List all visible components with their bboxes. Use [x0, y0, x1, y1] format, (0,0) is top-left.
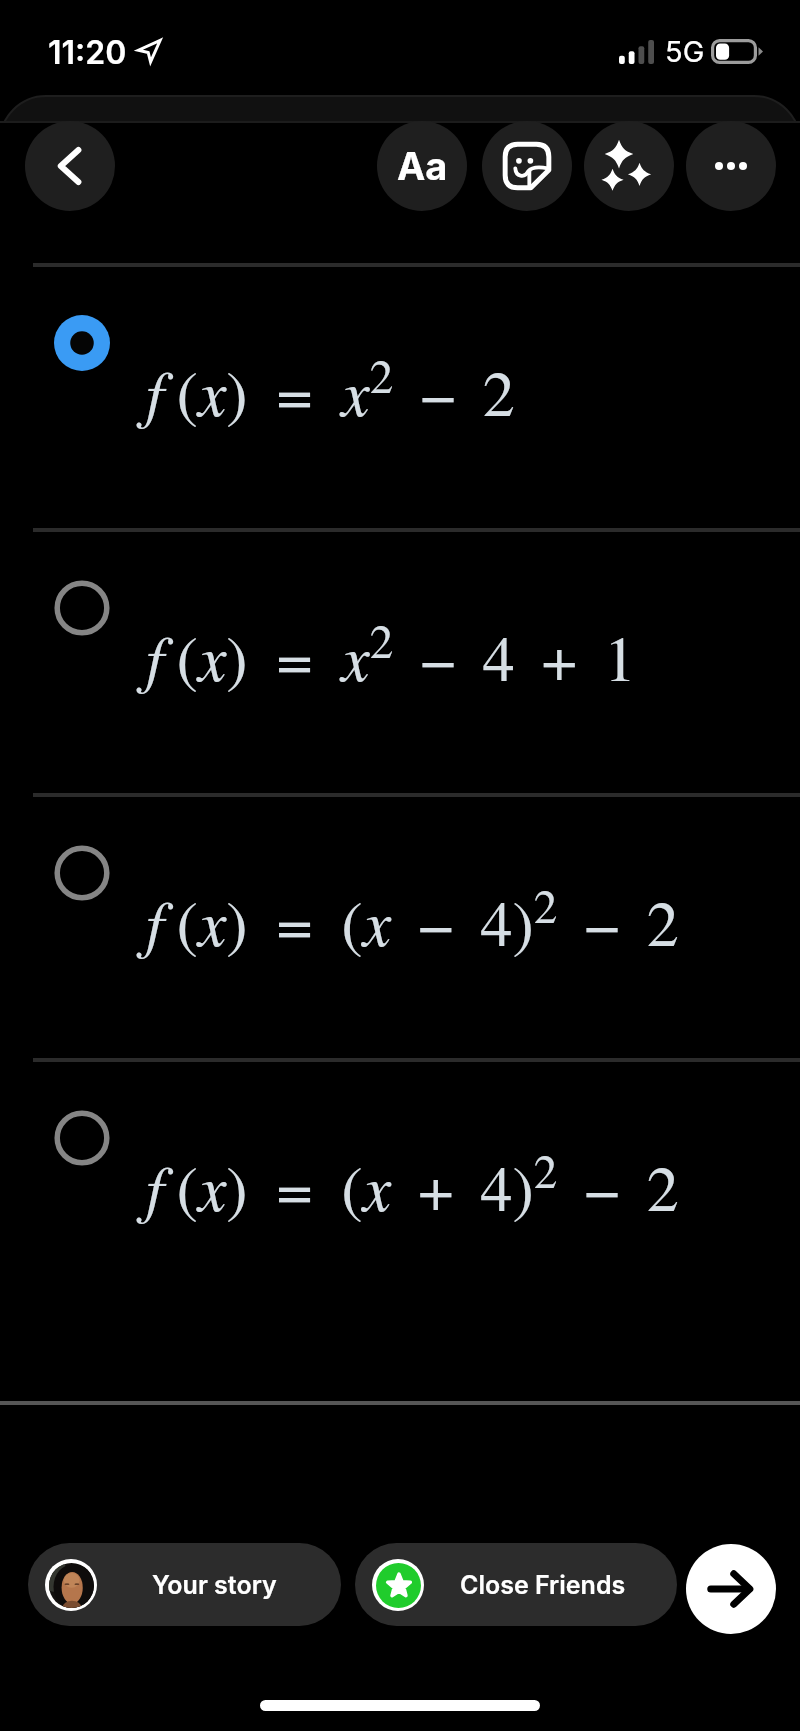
staticText: Your story — [152, 1570, 277, 1600]
staticText: f (x) = x2 − 4 + 1 — [146, 608, 637, 699]
staticText: f (x) = x2 − 2 — [146, 343, 515, 434]
button[interactable]: Effects — [584, 121, 674, 211]
staticText: f (x) = (x − 4)2 − 2 — [146, 873, 679, 964]
button[interactable]: Close Friends — [355, 1543, 677, 1626]
staticText: 11:20 — [48, 33, 127, 72]
button[interactable] — [0, 1060, 800, 1325]
button[interactable] — [0, 265, 800, 530]
button[interactable]: Stickers — [482, 121, 572, 211]
staticText: Aa — [397, 143, 448, 189]
button[interactable]: More options — [686, 121, 776, 211]
button[interactable]: Back — [25, 121, 115, 211]
button[interactable]: Text — [377, 121, 467, 211]
button[interactable] — [0, 795, 800, 1060]
staticText: Close Friends — [460, 1570, 626, 1600]
button[interactable] — [0, 530, 800, 795]
staticText: 5G — [665, 34, 705, 69]
button[interactable]: Your story — [28, 1543, 341, 1626]
button[interactable]: Send — [686, 1544, 776, 1634]
staticText: f (x) = (x + 4)2 − 2 — [146, 1138, 679, 1229]
